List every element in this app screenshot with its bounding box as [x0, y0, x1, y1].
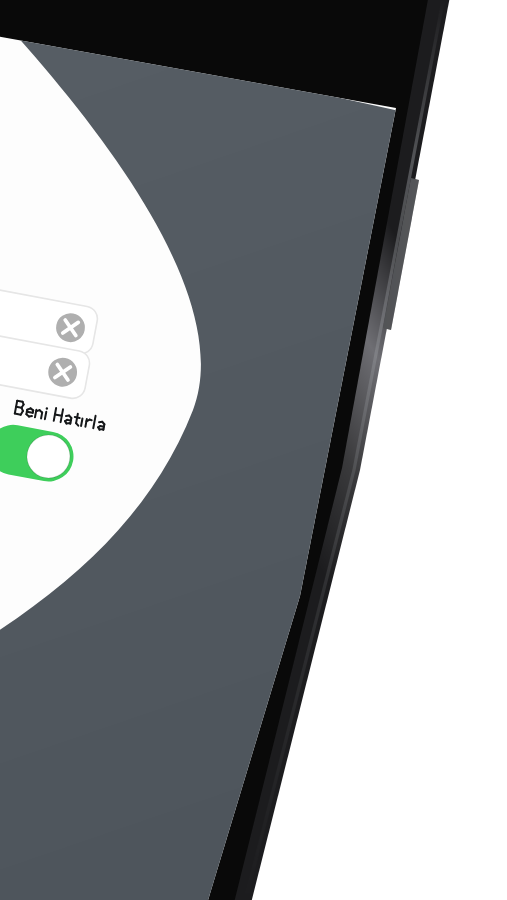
button[interactable]: Login screen preview on device	[0, 0, 507, 900]
